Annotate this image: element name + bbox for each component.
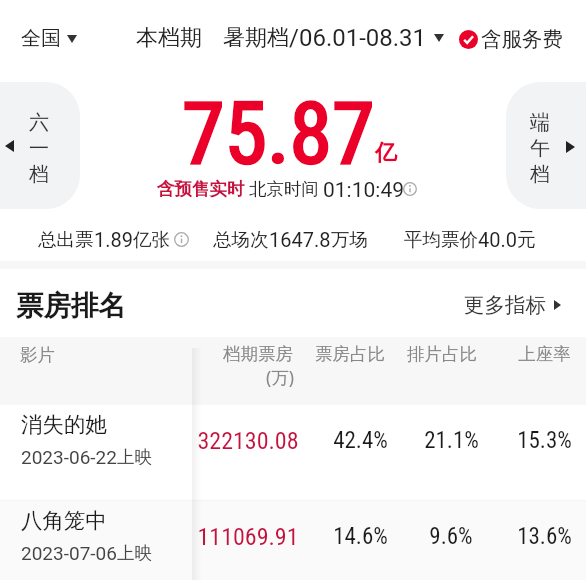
staticText: 2023-07-06	[21, 542, 117, 564]
staticText: 42.4%	[333, 427, 388, 454]
staticText: 影片	[20, 344, 55, 366]
staticText: 13.6%	[517, 523, 572, 550]
staticText: 总出票	[38, 228, 94, 251]
staticText: 排片占比	[407, 343, 477, 365]
staticText: 六 一 档	[29, 110, 49, 187]
staticText: 75.87	[182, 83, 375, 184]
staticText: 21.1%	[424, 427, 479, 454]
staticText: 2023-06-22	[21, 446, 117, 468]
staticText: 111069.91	[197, 523, 299, 551]
staticText: 1647.8	[269, 228, 331, 251]
button[interactable]: 本档期	[136, 24, 444, 52]
staticText: 更多指标	[464, 292, 546, 318]
staticText: 票房排名	[16, 289, 126, 324]
staticText: 消失的她	[21, 411, 107, 438]
staticText: 9.6%	[429, 523, 473, 550]
staticText: 1.89	[94, 228, 133, 251]
staticText: 元	[517, 228, 536, 251]
staticText: /06.01-08.31	[289, 24, 427, 52]
staticText: 总场次	[213, 228, 269, 251]
staticText: 端 午 档	[530, 110, 550, 187]
button[interactable]: 八角笼中	[0, 501, 586, 580]
staticText: 平均票价	[404, 228, 478, 251]
staticText: 全国	[21, 26, 61, 51]
button[interactable]: Previous period	[5, 140, 14, 152]
staticText: 上映	[117, 446, 152, 468]
staticText: 北京时间	[249, 178, 319, 200]
staticText: (万)	[266, 365, 294, 389]
staticText: 15.3%	[517, 427, 572, 454]
staticText: 上映	[117, 542, 152, 564]
staticText: 01:10:49	[323, 178, 404, 203]
staticText: 40.0	[478, 228, 517, 251]
button[interactable]: 含服务费	[459, 26, 563, 52]
staticText: 票房占比	[315, 343, 385, 365]
staticText: 亿张	[133, 228, 170, 251]
button[interactable]: 端 午 档	[506, 82, 586, 209]
button[interactable]: 消失的她	[0, 405, 586, 500]
staticText: 含服务费	[481, 26, 563, 52]
staticText: 暑期档	[223, 24, 289, 52]
button[interactable]: 六 一 档	[0, 82, 80, 209]
button[interactable]: 全国	[15, 24, 83, 53]
staticText: 本档期	[136, 24, 202, 52]
staticText: 万场	[331, 228, 368, 251]
button[interactable]: Next period	[566, 141, 575, 153]
staticText: 14.6%	[333, 523, 388, 550]
staticText: 含预售实时	[157, 178, 245, 200]
staticText: 八角笼中	[21, 507, 107, 534]
staticText: 上座率	[518, 343, 571, 365]
staticText: 档期票房	[223, 343, 293, 365]
button[interactable]: 更多指标	[464, 292, 561, 318]
button[interactable]: 总出票	[38, 228, 189, 251]
staticText: 亿	[375, 139, 397, 167]
staticText: 322130.08	[197, 427, 299, 455]
